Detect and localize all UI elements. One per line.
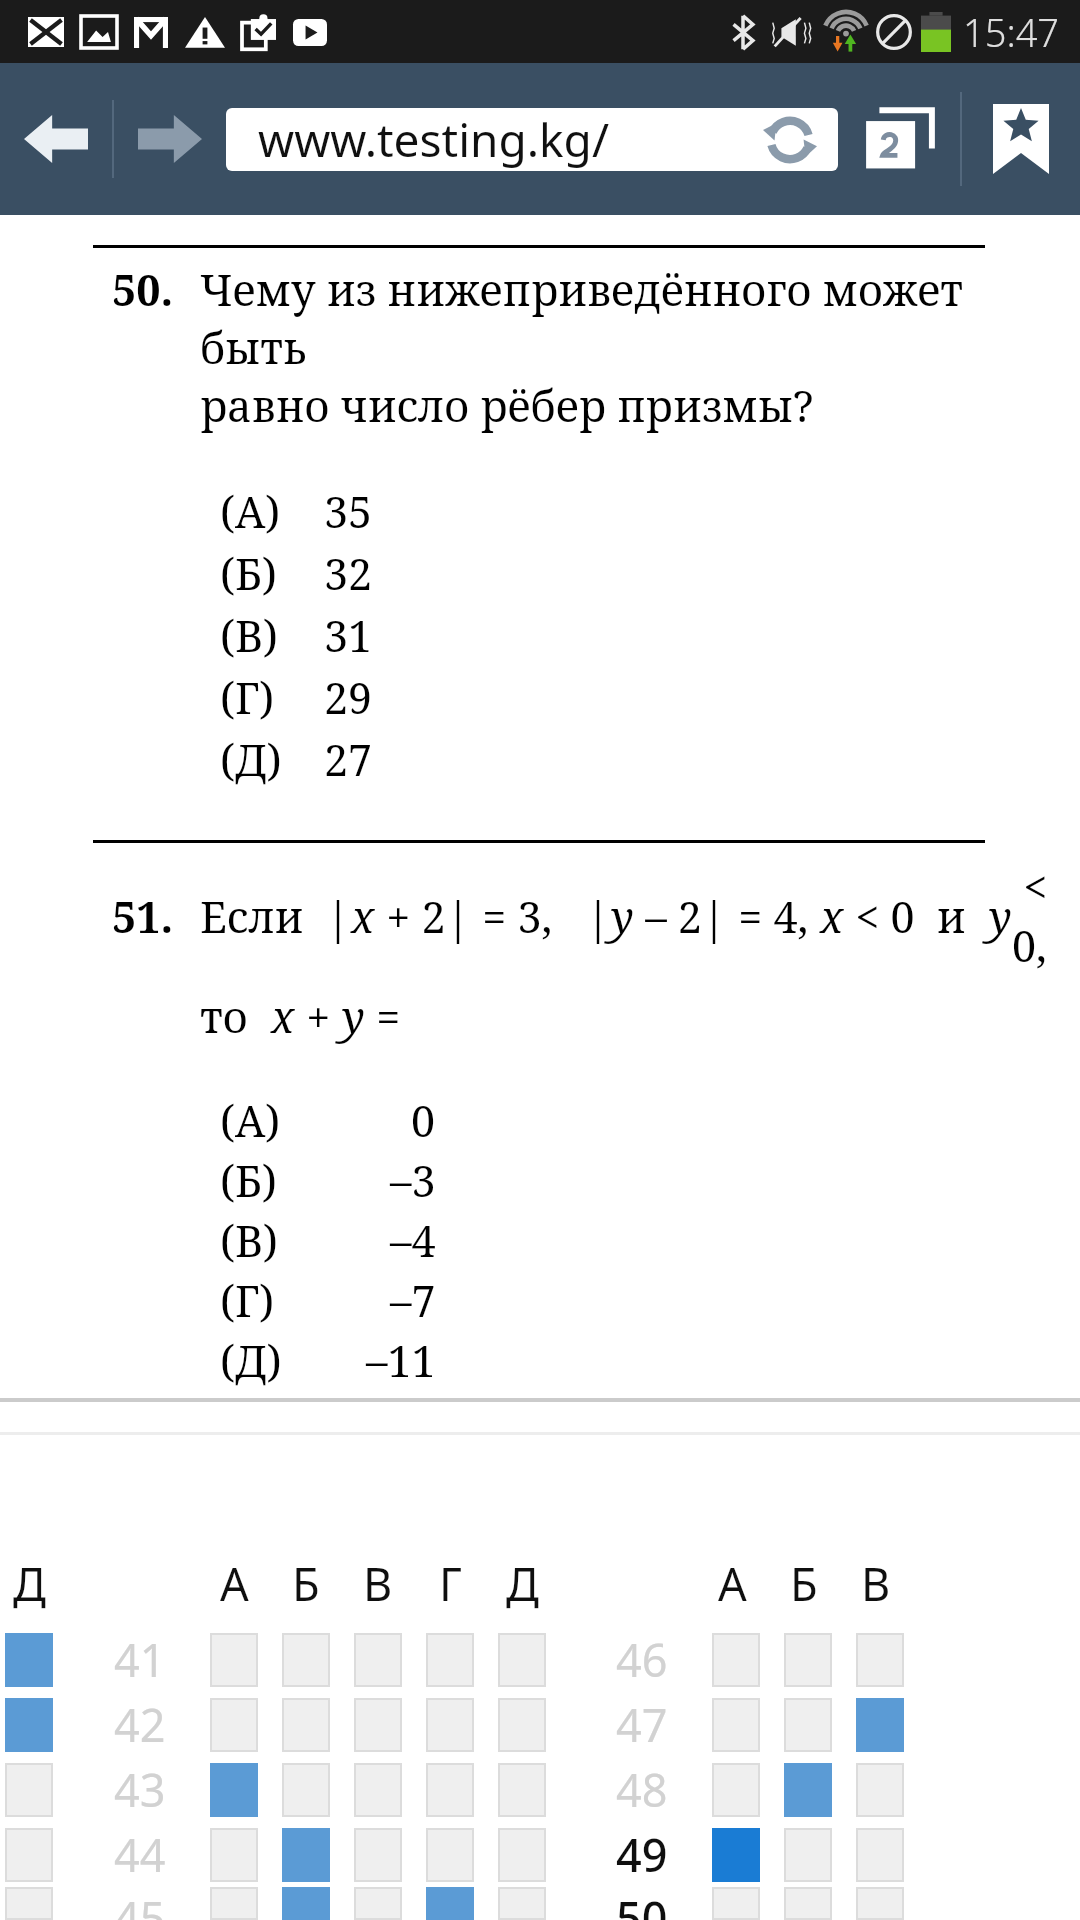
button[interactable]: www.testing.kg/ bbox=[226, 108, 838, 171]
staticText: | bbox=[586, 887, 611, 946]
staticText: 50. bbox=[112, 260, 200, 319]
staticText: 15:47 bbox=[963, 6, 1060, 58]
staticText: (Д) bbox=[220, 730, 324, 789]
button[interactable] bbox=[5, 1887, 53, 1920]
staticText: www.testing.kg/ bbox=[258, 108, 610, 171]
button[interactable] bbox=[856, 1828, 904, 1882]
button[interactable] bbox=[712, 1633, 760, 1687]
button[interactable] bbox=[426, 1698, 474, 1752]
staticText: 44 bbox=[114, 1824, 166, 1885]
staticText: А bbox=[718, 1553, 747, 1611]
staticText: –4 bbox=[390, 1211, 436, 1270]
button[interactable] bbox=[282, 1698, 330, 1752]
staticText: (Г) bbox=[220, 1271, 324, 1330]
button[interactable] bbox=[498, 1828, 546, 1882]
button[interactable] bbox=[210, 1633, 258, 1687]
button[interactable] bbox=[784, 1633, 832, 1687]
staticText: 43 bbox=[114, 1759, 166, 1820]
staticText: x bbox=[271, 987, 295, 1046]
button[interactable] bbox=[856, 1763, 904, 1817]
staticText: (А) bbox=[220, 482, 324, 541]
button[interactable] bbox=[712, 1698, 760, 1752]
staticText: Б bbox=[292, 1553, 320, 1611]
staticText: + 2 bbox=[375, 887, 446, 946]
button[interactable] bbox=[498, 1763, 546, 1817]
button[interactable] bbox=[426, 1633, 474, 1687]
button[interactable]: Tabs bbox=[838, 63, 960, 215]
button[interactable] bbox=[210, 1887, 258, 1920]
staticText: 47 bbox=[616, 1694, 668, 1755]
staticText: | bbox=[702, 887, 727, 946]
staticText: | bbox=[326, 887, 351, 946]
button[interactable] bbox=[426, 1828, 474, 1882]
staticText: + bbox=[295, 987, 342, 1046]
staticText: А bbox=[220, 1553, 249, 1611]
staticText: 27 bbox=[324, 730, 373, 789]
button[interactable] bbox=[282, 1763, 330, 1817]
button[interactable]: Bookmark bbox=[962, 63, 1080, 215]
staticText: –3 bbox=[390, 1151, 436, 1210]
button[interactable] bbox=[784, 1698, 832, 1752]
button[interactable] bbox=[354, 1633, 402, 1687]
button[interactable] bbox=[210, 1828, 258, 1882]
button[interactable] bbox=[784, 1887, 832, 1920]
staticText: y bbox=[611, 887, 634, 946]
button[interactable] bbox=[354, 1698, 402, 1752]
button[interactable] bbox=[5, 1763, 53, 1817]
button[interactable] bbox=[712, 1763, 760, 1817]
staticText: Б bbox=[790, 1553, 818, 1611]
staticText: 31 bbox=[324, 606, 373, 665]
button[interactable] bbox=[712, 1887, 760, 1920]
button[interactable] bbox=[856, 1633, 904, 1687]
staticText: 0 bbox=[411, 1091, 436, 1150]
button[interactable] bbox=[498, 1633, 546, 1687]
button[interactable] bbox=[856, 1887, 904, 1920]
staticText: 46 bbox=[616, 1629, 668, 1690]
staticText: < 0, bbox=[1012, 857, 1050, 975]
button[interactable] bbox=[426, 1763, 474, 1817]
staticText: (Б) bbox=[220, 1151, 324, 1210]
staticText: Г bbox=[439, 1553, 462, 1611]
staticText: 41 bbox=[114, 1629, 166, 1690]
button[interactable] bbox=[282, 1633, 330, 1687]
staticText: (Г) bbox=[220, 668, 324, 727]
button[interactable] bbox=[498, 1698, 546, 1752]
staticText: | bbox=[446, 887, 471, 946]
staticText: y bbox=[989, 887, 1012, 946]
staticText: (Д) bbox=[220, 1331, 324, 1390]
button[interactable] bbox=[354, 1828, 402, 1882]
button[interactable] bbox=[784, 1828, 832, 1882]
staticText: 45 bbox=[114, 1887, 166, 1920]
staticText: (В) bbox=[220, 606, 324, 665]
button[interactable] bbox=[5, 1828, 53, 1882]
staticText: 51. bbox=[112, 887, 200, 946]
button[interactable] bbox=[498, 1887, 546, 1920]
staticText: (В) bbox=[220, 1211, 324, 1270]
staticText: < 0 и bbox=[844, 887, 989, 946]
staticText: x bbox=[820, 887, 844, 946]
staticText: (А) bbox=[220, 1091, 324, 1150]
button[interactable]: Forward bbox=[114, 63, 226, 215]
button[interactable] bbox=[354, 1763, 402, 1817]
staticText: x bbox=[351, 887, 375, 946]
staticText: 42 bbox=[114, 1694, 166, 1755]
button[interactable] bbox=[354, 1887, 402, 1920]
staticText: 49 bbox=[616, 1824, 668, 1885]
staticText: 48 bbox=[616, 1759, 668, 1820]
button[interactable]: Back bbox=[0, 63, 112, 215]
staticText: –7 bbox=[390, 1271, 436, 1330]
button[interactable] bbox=[210, 1698, 258, 1752]
staticText: 50 bbox=[616, 1887, 668, 1920]
staticText: Чему из нижеприведённого может быть равн… bbox=[200, 260, 1040, 434]
staticText: 32 bbox=[324, 544, 373, 603]
staticText: то bbox=[200, 987, 271, 1046]
